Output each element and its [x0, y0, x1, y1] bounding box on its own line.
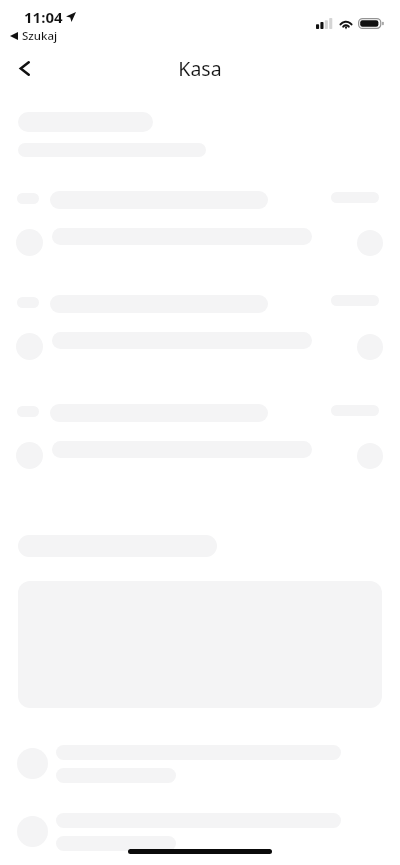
button[interactable]: Transaction group [0, 399, 400, 495]
button[interactable]: Back [6, 50, 42, 86]
staticText: Kasa [0, 55, 400, 82]
button[interactable]: List item [0, 806, 400, 865]
staticText: Szukaj [22, 28, 58, 44]
button[interactable]: Transaction group [0, 289, 400, 385]
staticText: 11:04 [24, 7, 63, 27]
button[interactable]: List item [0, 738, 400, 800]
button[interactable]: Transaction group [0, 186, 400, 282]
